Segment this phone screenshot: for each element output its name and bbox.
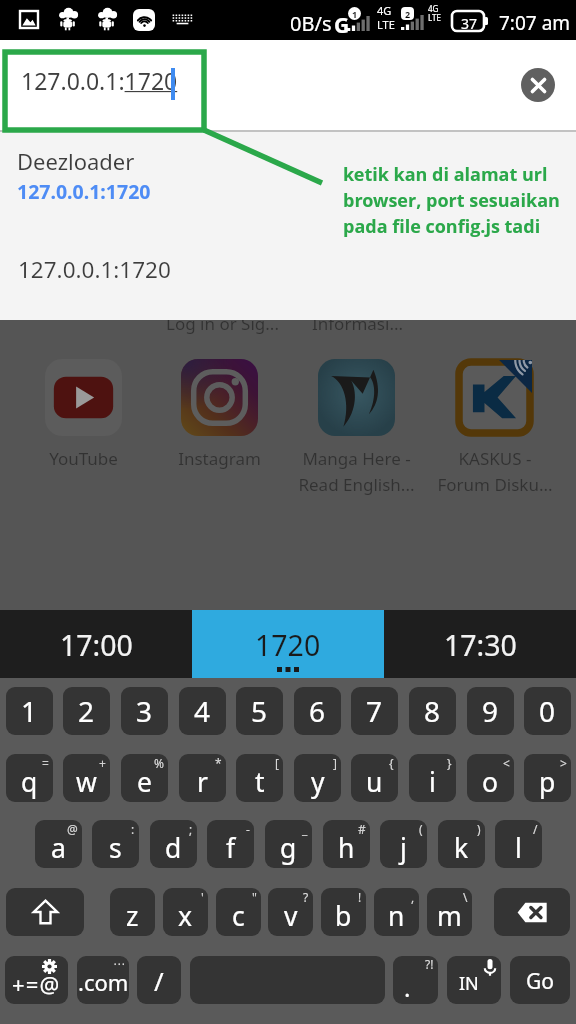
button[interactable]: g xyxy=(265,820,312,868)
staticText: LTE xyxy=(428,12,441,23)
staticText: g xyxy=(280,830,297,866)
staticText: @ xyxy=(67,821,78,837)
staticText: IN xyxy=(459,971,479,996)
button[interactable]: z xyxy=(110,888,155,936)
button[interactable]: Manga Here - Read English... xyxy=(294,359,419,496)
staticText: 17:00 xyxy=(60,626,133,665)
staticText: 2 xyxy=(405,8,411,20)
staticText: ( xyxy=(419,821,423,837)
button[interactable]: 127.0.0.1:1720 xyxy=(10,48,530,122)
button[interactable]: 6 xyxy=(294,687,341,735)
staticText: i xyxy=(429,764,436,800)
staticText: 1 xyxy=(21,692,38,730)
button[interactable]: YouTube xyxy=(21,359,146,470)
staticText: 37 xyxy=(461,14,478,33)
staticText: 2 xyxy=(78,692,95,730)
button[interactable]: 4 xyxy=(179,687,226,735)
staticText: _ xyxy=(302,821,308,837)
button[interactable]: / xyxy=(137,956,181,1004)
staticText: > xyxy=(560,755,567,771)
staticText: h xyxy=(338,830,355,866)
button[interactable]: 3 xyxy=(121,687,168,735)
staticText: 7:07 am xyxy=(499,10,571,36)
button[interactable]: Clear text xyxy=(521,68,555,102)
button[interactable]: 0 xyxy=(524,687,571,735)
button[interactable]: k xyxy=(438,820,485,868)
button[interactable]: o xyxy=(467,754,514,802)
button[interactable]: Deezloader xyxy=(0,142,576,214)
staticText: .com xyxy=(78,967,129,997)
button[interactable]: u xyxy=(351,754,398,802)
staticText: s xyxy=(109,830,122,866)
button[interactable]: a xyxy=(35,820,82,868)
button[interactable]: q xyxy=(6,754,53,802)
button[interactable]: w xyxy=(63,754,110,802)
button[interactable]: h xyxy=(323,820,370,868)
button[interactable]: 127.0.0.1:1720 xyxy=(0,246,576,302)
button[interactable]: Go xyxy=(510,956,570,1004)
button[interactable]: Space xyxy=(190,956,385,1004)
staticText: 127.0.0.1:1720 xyxy=(17,178,151,205)
staticText: l xyxy=(515,830,522,866)
button[interactable]: Backspace xyxy=(494,888,570,936)
button[interactable]: 9 xyxy=(467,687,514,735)
button[interactable]: p xyxy=(524,754,571,802)
button[interactable]: x xyxy=(163,888,208,936)
button[interactable]: Period xyxy=(393,956,438,1004)
button[interactable]: c xyxy=(216,888,261,936)
staticText: " xyxy=(252,889,257,905)
button[interactable]: v xyxy=(268,888,313,936)
staticText: x xyxy=(178,898,193,934)
staticText: m xyxy=(437,898,462,934)
staticText: z xyxy=(126,898,139,934)
button[interactable]: n xyxy=(374,888,419,936)
button[interactable]: Instagram xyxy=(157,359,282,470)
button[interactable]: Symbols xyxy=(5,956,68,1004)
staticText: ' xyxy=(201,889,204,905)
button[interactable]: 1 xyxy=(6,687,53,735)
button[interactable]: t xyxy=(236,754,283,802)
staticText: / xyxy=(154,963,164,998)
button[interactable]: j xyxy=(380,820,427,868)
button[interactable]: f xyxy=(207,820,254,868)
staticText: % xyxy=(154,755,164,771)
button[interactable]: 2 xyxy=(63,687,110,735)
button[interactable]: s xyxy=(92,820,139,868)
button[interactable]: l xyxy=(495,820,542,868)
staticText: YouTube xyxy=(49,447,118,470)
staticText: { xyxy=(389,755,394,771)
staticText: 4 xyxy=(194,692,211,730)
button[interactable]: d xyxy=(150,820,197,868)
button[interactable]: 17:00 xyxy=(0,610,192,678)
button[interactable]: 5 xyxy=(236,687,283,735)
button[interactable]: b xyxy=(321,888,366,936)
button[interactable]: y xyxy=(294,754,341,802)
staticText: 0B/s xyxy=(290,10,332,37)
staticText: r xyxy=(197,764,208,800)
staticText: o xyxy=(482,764,499,800)
button[interactable]: i xyxy=(409,754,456,802)
staticText: 5 xyxy=(251,692,268,730)
button[interactable]: 7 xyxy=(351,687,398,735)
staticText: * xyxy=(215,755,222,771)
staticText: ?! xyxy=(425,956,434,972)
staticText: e xyxy=(137,764,152,800)
button[interactable]: Language xyxy=(447,956,501,1004)
staticText: u xyxy=(366,764,383,800)
button[interactable]: 8 xyxy=(409,687,456,735)
button[interactable]: Shift xyxy=(6,888,84,936)
staticText: ⋯ xyxy=(113,957,125,971)
staticText: +=@ xyxy=(12,969,61,999)
staticText: \ xyxy=(463,889,468,905)
button[interactable]: KASKUS - Forum Disku... xyxy=(432,359,557,496)
staticText: - xyxy=(246,821,250,837)
button[interactable]: 17:30 xyxy=(384,610,576,678)
staticText: LTE xyxy=(377,17,395,32)
staticText: [ xyxy=(275,755,279,771)
button[interactable]: 1720 xyxy=(192,610,384,678)
button[interactable]: m xyxy=(427,888,472,936)
button[interactable]: r xyxy=(179,754,226,802)
button[interactable]: e xyxy=(121,754,168,802)
button[interactable]: .com xyxy=(77,956,129,1004)
staticText: 0 xyxy=(539,692,556,730)
